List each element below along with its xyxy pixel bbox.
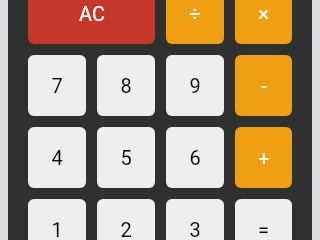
- staticText: 5: [120, 146, 132, 169]
- button[interactable]: Two: [97, 199, 155, 240]
- staticText: 3: [189, 218, 201, 240]
- staticText: 4: [51, 146, 63, 169]
- staticText: 7: [51, 74, 63, 97]
- button[interactable]: Five: [97, 127, 155, 188]
- button[interactable]: Seven: [28, 55, 86, 116]
- staticText: 6: [189, 146, 201, 169]
- button[interactable]: Three: [166, 199, 224, 240]
- button[interactable]: Eight: [97, 55, 155, 116]
- button[interactable]: One: [28, 199, 86, 240]
- staticText: =: [258, 218, 269, 240]
- button[interactable]: Nine: [166, 55, 224, 116]
- staticText: AC: [79, 2, 105, 25]
- button[interactable]: All clear: [28, 0, 155, 44]
- button[interactable]: Divide: [166, 0, 224, 44]
- button[interactable]: Plus: [235, 127, 292, 188]
- button[interactable]: Six: [166, 127, 224, 188]
- staticText: 1: [51, 218, 63, 240]
- staticText: 9: [189, 74, 201, 97]
- staticText: +: [258, 146, 270, 169]
- staticText: 8: [120, 74, 132, 97]
- button[interactable]: Equals: [235, 199, 292, 240]
- staticText: 2: [120, 218, 132, 240]
- staticText: ÷: [189, 2, 201, 25]
- staticText: ×: [258, 2, 269, 25]
- staticText: -: [261, 74, 267, 97]
- button[interactable]: Multiply: [235, 0, 292, 44]
- button[interactable]: Four: [28, 127, 86, 188]
- button[interactable]: Minus: [235, 55, 292, 116]
